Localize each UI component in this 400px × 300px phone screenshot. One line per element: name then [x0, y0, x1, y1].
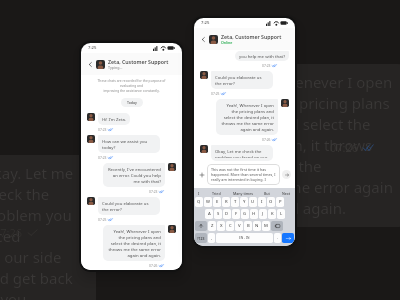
- staticText: Online: [221, 40, 233, 45]
- button[interactable]: Next: [280, 191, 293, 196]
- button[interactable]: Today: [127, 100, 137, 105]
- button[interactable]: G: [241, 209, 249, 219]
- staticText: X: [220, 223, 223, 229]
- staticText: 07:25: [211, 91, 220, 95]
- staticText: E: [216, 199, 219, 205]
- staticText: 07:26: [262, 137, 271, 141]
- staticText: 07:23: [98, 127, 107, 131]
- button[interactable]: B: [244, 221, 252, 231]
- staticText: Recently, I've encountered an error. Cou…: [107, 166, 161, 184]
- staticText: 7:25: [88, 45, 97, 51]
- button[interactable]: But: [262, 191, 272, 196]
- staticText: Q: [197, 199, 201, 205]
- staticText: EN - IN: [239, 236, 250, 240]
- staticText: S: [217, 211, 220, 217]
- staticText: But: [264, 191, 270, 196]
- button[interactable]: Send: [282, 233, 294, 243]
- button[interactable]: I: [196, 191, 202, 196]
- staticText: 07:26: [0, 225, 23, 240]
- button[interactable]: Yeah!, Whenever I open the pricing plans…: [107, 228, 161, 258]
- staticText: Y: [243, 199, 246, 205]
- button[interactable]: F: [232, 209, 240, 219]
- button[interactable]: R: [222, 197, 230, 207]
- staticText: 07:26: [330, 140, 359, 155]
- staticText: I: [198, 191, 200, 196]
- staticText: This was not the first time it has happe…: [211, 167, 276, 182]
- button[interactable]: Hi! I'm Zeta.: [102, 116, 126, 122]
- button[interactable]: Yeah!, Whenever I open the pricing plans…: [220, 102, 274, 132]
- staticText: 07:23: [98, 155, 107, 159]
- staticText: B: [247, 223, 250, 229]
- button[interactable]: ,: [208, 233, 215, 243]
- staticText: L: [280, 211, 283, 217]
- button[interactable]: Back: [87, 58, 176, 70]
- staticText: you help me with that?: [239, 53, 285, 59]
- staticText: Could you elaborate us the error?: [215, 74, 269, 86]
- button[interactable]: EN - IN: [216, 233, 273, 243]
- button[interactable]: H: [250, 209, 258, 219]
- staticText: Z: [211, 223, 214, 229]
- button[interactable]: U: [249, 197, 257, 207]
- button[interactable]: Okay, Let me check the problem you faced…: [215, 148, 269, 158]
- button[interactable]: Z: [208, 221, 216, 231]
- staticText: 7:25: [201, 20, 210, 26]
- staticText: Hi! I'm Zeta.: [102, 116, 126, 122]
- button[interactable]: O: [267, 197, 275, 207]
- staticText: M: [264, 223, 268, 229]
- button[interactable]: Q: [195, 197, 203, 207]
- staticText: T: [234, 199, 237, 205]
- button[interactable]: This was not the first time it has happe…: [211, 167, 276, 182]
- button[interactable]: X: [217, 221, 225, 231]
- button[interactable]: Attach: [198, 171, 205, 178]
- button[interactable]: S: [214, 209, 222, 219]
- staticText: F: [235, 211, 238, 217]
- button[interactable]: Shift: [195, 221, 207, 231]
- button[interactable]: Recently, I've encountered an error. Cou…: [107, 166, 161, 184]
- staticText: How can we assist you today?: [102, 138, 156, 150]
- button[interactable]: Could you elaborate us the error?: [215, 74, 269, 86]
- button[interactable]: A: [205, 209, 213, 219]
- button[interactable]: N: [253, 221, 261, 231]
- button[interactable]: Backspace: [271, 221, 283, 231]
- button[interactable]: Back: [200, 33, 289, 45]
- staticText: G: [243, 211, 247, 217]
- button[interactable]: Back: [200, 36, 207, 43]
- staticText: ,: [211, 235, 213, 241]
- button[interactable]: ?123: [195, 233, 207, 243]
- staticText: Today: [127, 100, 137, 105]
- staticText: ?123: [197, 236, 205, 241]
- button[interactable]: Tried: [210, 191, 223, 196]
- staticText: J: [262, 211, 264, 217]
- staticText: R: [225, 199, 228, 205]
- button[interactable]: .: [274, 233, 281, 243]
- button[interactable]: L: [277, 209, 285, 219]
- staticText: Zeta, Customer Support: [221, 33, 282, 40]
- button[interactable]: P: [276, 197, 284, 207]
- staticText: Yeah!, Whenever I open the pricing plans…: [220, 102, 274, 132]
- button[interactable]: W: [204, 197, 212, 207]
- button[interactable]: Back: [87, 61, 94, 68]
- button[interactable]: M: [262, 221, 270, 231]
- staticText: Next: [282, 191, 291, 196]
- button[interactable]: How can we assist you today?: [102, 138, 156, 150]
- button[interactable]: T: [231, 197, 239, 207]
- button[interactable]: V: [235, 221, 243, 231]
- button[interactable]: K: [268, 209, 276, 219]
- button[interactable]: Many times: [231, 191, 255, 196]
- staticText: W: [206, 199, 210, 205]
- button[interactable]: Send message: [282, 170, 291, 179]
- button[interactable]: J: [259, 209, 267, 219]
- staticText: I: [261, 199, 263, 205]
- staticText: Many times: [233, 191, 253, 196]
- button[interactable]: Y: [240, 197, 248, 207]
- staticText: C: [229, 223, 232, 229]
- staticText: Tried: [212, 191, 221, 196]
- button[interactable]: D: [223, 209, 231, 219]
- button[interactable]: you help me with that?: [239, 53, 285, 59]
- button[interactable]: E: [213, 197, 221, 207]
- button[interactable]: Could you elaborate us the error?: [102, 200, 156, 212]
- staticText: 07:26: [149, 263, 158, 267]
- button[interactable]: C: [226, 221, 234, 231]
- button[interactable]: I: [258, 197, 266, 207]
- staticText: H: [252, 211, 256, 217]
